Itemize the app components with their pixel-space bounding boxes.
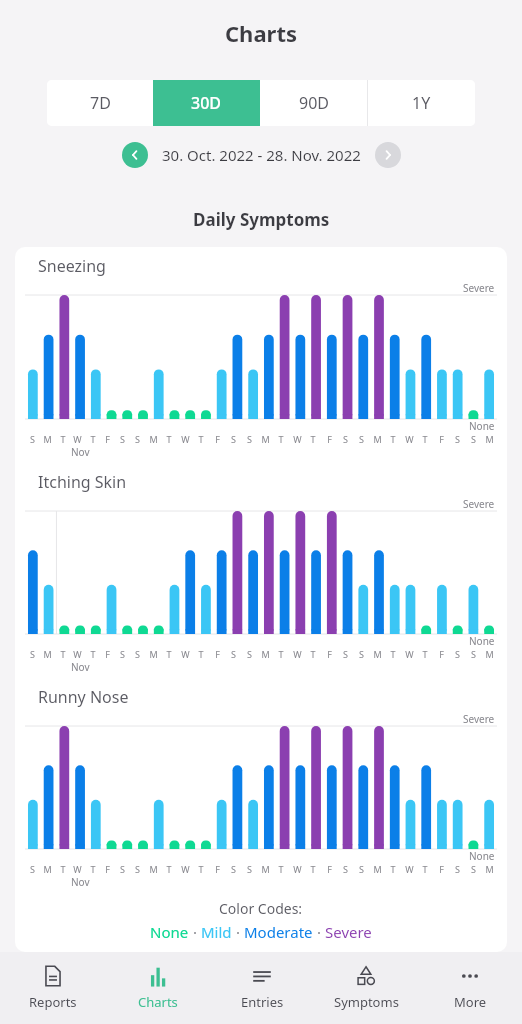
staticText: F bbox=[327, 433, 332, 445]
staticText: W bbox=[73, 648, 82, 660]
staticText: None bbox=[469, 849, 495, 863]
staticText: T bbox=[166, 648, 172, 660]
staticText: W bbox=[73, 863, 82, 875]
staticText: S bbox=[359, 433, 364, 445]
staticText: M bbox=[373, 863, 382, 875]
staticText: None bbox=[469, 634, 495, 648]
staticText: T bbox=[278, 863, 284, 875]
staticText: F bbox=[215, 863, 220, 875]
staticText: M bbox=[149, 648, 158, 660]
button[interactable]: Next period bbox=[375, 142, 401, 168]
staticText: T bbox=[60, 648, 66, 660]
staticText: F bbox=[439, 433, 444, 445]
staticText: M bbox=[261, 648, 270, 660]
staticText: T bbox=[198, 648, 204, 660]
staticText: S bbox=[359, 863, 364, 875]
staticText: Mild bbox=[201, 922, 232, 942]
staticText: S bbox=[343, 648, 348, 660]
staticText: None bbox=[469, 419, 495, 433]
staticText: Severe bbox=[463, 712, 495, 726]
staticText: S bbox=[247, 648, 252, 660]
button[interactable]: 30D bbox=[153, 80, 260, 126]
staticText: T bbox=[90, 648, 96, 660]
staticText: W bbox=[73, 433, 82, 445]
staticText: 30. Oct. 2022 - 28. Nov. 2022 bbox=[162, 145, 361, 165]
staticText: T bbox=[390, 648, 396, 660]
staticText: S bbox=[30, 648, 35, 660]
staticText: S bbox=[135, 433, 140, 445]
staticText: M bbox=[373, 433, 382, 445]
staticText: Severe bbox=[463, 497, 495, 511]
staticText: T bbox=[60, 863, 66, 875]
staticText: T bbox=[310, 648, 316, 660]
staticText: S bbox=[359, 648, 364, 660]
staticText: S bbox=[135, 863, 140, 875]
staticText: M bbox=[485, 648, 494, 660]
staticText: 1Y bbox=[412, 92, 431, 114]
staticText: M bbox=[261, 863, 270, 875]
staticText: M bbox=[485, 863, 494, 875]
staticText: Moderate bbox=[244, 922, 313, 942]
button[interactable]: Symptoms bbox=[314, 952, 418, 1024]
staticText: T bbox=[310, 863, 316, 875]
staticText: T bbox=[90, 863, 96, 875]
staticText: Symptoms bbox=[334, 993, 399, 1011]
staticText: M bbox=[43, 863, 52, 875]
staticText: 7D bbox=[90, 92, 111, 114]
button[interactable]: Entries bbox=[210, 952, 314, 1024]
staticText: 90D bbox=[299, 92, 329, 114]
staticText: T bbox=[166, 433, 172, 445]
staticText: M bbox=[149, 433, 158, 445]
staticText: T bbox=[90, 433, 96, 445]
button[interactable]: 7D bbox=[47, 80, 153, 126]
staticText: · bbox=[189, 922, 201, 942]
staticText: T bbox=[278, 648, 284, 660]
staticText: T bbox=[198, 433, 204, 445]
staticText: Charts bbox=[138, 993, 178, 1011]
staticText: S bbox=[120, 433, 125, 445]
staticText: W bbox=[293, 433, 302, 445]
staticText: Entries bbox=[241, 993, 284, 1011]
button[interactable]: Previous period bbox=[122, 142, 148, 168]
staticText: W bbox=[405, 433, 414, 445]
staticText: W bbox=[405, 648, 414, 660]
staticText: Color Codes: bbox=[219, 899, 303, 918]
staticText: Charts bbox=[225, 18, 298, 48]
staticText: · bbox=[232, 922, 244, 942]
staticText: F bbox=[439, 648, 444, 660]
staticText: Runny Nose bbox=[38, 686, 129, 708]
staticText: Nov bbox=[71, 875, 90, 889]
button[interactable]: 90D bbox=[260, 80, 367, 126]
staticText: S bbox=[135, 648, 140, 660]
button[interactable]: Charts bbox=[105, 952, 210, 1024]
staticText: W bbox=[293, 648, 302, 660]
staticText: F bbox=[439, 863, 444, 875]
button[interactable]: 1Y bbox=[368, 80, 475, 126]
staticText: T bbox=[422, 433, 428, 445]
staticText: F bbox=[105, 863, 110, 875]
staticText: S bbox=[343, 863, 348, 875]
staticText: T bbox=[166, 863, 172, 875]
staticText: W bbox=[181, 433, 190, 445]
button[interactable]: More bbox=[418, 952, 522, 1024]
staticText: T bbox=[422, 648, 428, 660]
staticText: S bbox=[247, 863, 252, 875]
staticText: · bbox=[313, 922, 325, 942]
staticText: S bbox=[231, 863, 236, 875]
staticText: S bbox=[343, 433, 348, 445]
staticText: S bbox=[471, 433, 476, 445]
staticText: S bbox=[471, 863, 476, 875]
staticText: T bbox=[310, 433, 316, 445]
staticText: M bbox=[373, 648, 382, 660]
staticText: S bbox=[120, 863, 125, 875]
staticText: W bbox=[405, 863, 414, 875]
button[interactable]: Reports bbox=[0, 952, 105, 1024]
staticText: S bbox=[231, 648, 236, 660]
staticText: T bbox=[390, 433, 396, 445]
staticText: S bbox=[455, 648, 460, 660]
staticText: Nov bbox=[71, 445, 90, 459]
staticText: More bbox=[454, 993, 487, 1011]
staticText: M bbox=[485, 433, 494, 445]
staticText: F bbox=[215, 433, 220, 445]
staticText: F bbox=[327, 648, 332, 660]
